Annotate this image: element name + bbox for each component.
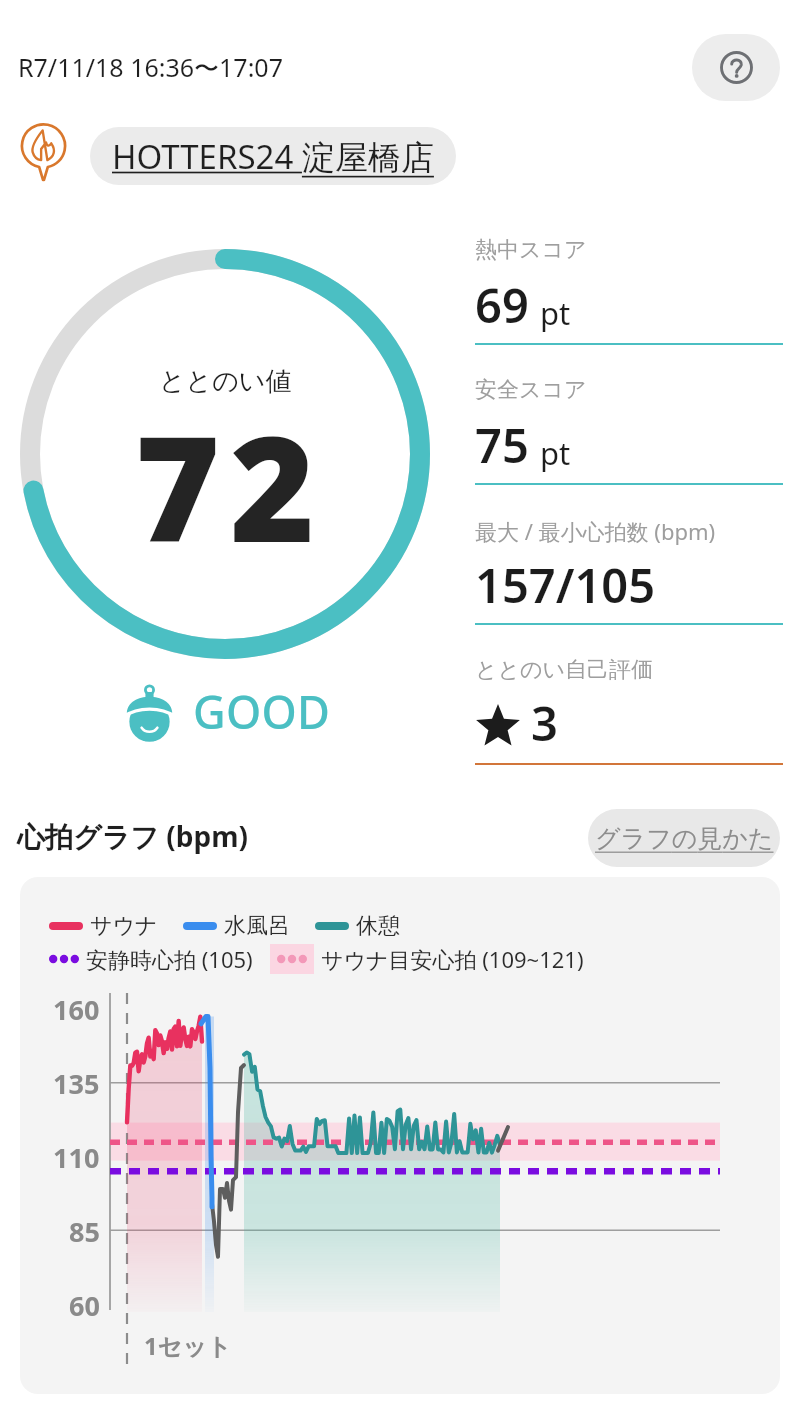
button[interactable]: 熱中スコア (475, 236, 783, 366)
staticText: 60 (69, 1287, 100, 1324)
button[interactable]: GOOD (124, 680, 330, 746)
button[interactable]: 最大 / 最小心拍数 (bpm) (475, 516, 783, 646)
staticText: pt (540, 292, 571, 334)
staticText: 157/105 (475, 553, 656, 617)
staticText: HOTTERS24 淀屋橋店 (112, 134, 434, 179)
staticText: 最大 / 最小心拍数 (bpm) (475, 516, 716, 546)
staticText: GOOD (193, 681, 330, 742)
button[interactable]: Help (692, 34, 780, 101)
staticText: ととのい値 (159, 365, 292, 398)
staticText: 85 (69, 1213, 100, 1250)
button[interactable]: 安全スコア (475, 376, 783, 506)
staticText: 心拍グラフ (bpm) (17, 817, 248, 855)
staticText: 160 (53, 991, 100, 1028)
staticText: 3 (531, 691, 558, 755)
staticText: サウナ目安心拍 (109~121) (321, 944, 584, 974)
staticText: 安全スコア (475, 376, 587, 404)
staticText: 熱中スコア (475, 236, 587, 264)
staticText: 110 (53, 1139, 100, 1176)
staticText: 水風呂 (224, 912, 290, 940)
staticText: グラフの見かた (595, 823, 774, 854)
button[interactable]: HOTTERS24 淀屋橋店 (90, 127, 456, 185)
staticText: 69 (475, 273, 529, 337)
staticText: ととのい自己評価 (475, 656, 654, 684)
staticText: 135 (53, 1065, 100, 1102)
button[interactable]: ととのい自己評価 (475, 656, 783, 786)
staticText: サウナ (90, 912, 158, 940)
staticText: pt (540, 432, 571, 474)
staticText: 1セット (144, 1329, 232, 1362)
staticText: 75 (475, 413, 529, 477)
button[interactable]: グラフの見かた (588, 809, 780, 867)
staticText: 休憩 (356, 912, 400, 940)
staticText: R7/11/18 16:36〜17:07 (18, 50, 283, 84)
staticText: 72 (135, 387, 325, 584)
staticText: 安静時心拍 (105) (86, 944, 253, 974)
